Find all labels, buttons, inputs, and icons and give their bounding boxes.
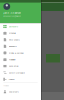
button[interactable]: Time Sheets bbox=[0, 36, 41, 43]
staticText: Availability bbox=[9, 58, 16, 61]
button[interactable]: Availability bbox=[0, 56, 41, 63]
staticText: Toolbox bbox=[3, 85, 9, 87]
button[interactable]: Logout bbox=[0, 76, 41, 83]
button[interactable]: Schedule bbox=[0, 30, 41, 36]
staticText: Dashboard bbox=[9, 25, 18, 28]
button[interactable]: Coworkers bbox=[0, 88, 41, 95]
staticText: Requests bbox=[9, 45, 17, 48]
staticText: Send Email bbox=[9, 65, 18, 67]
staticText: Schedule bbox=[9, 32, 16, 34]
staticText: Switch Workplace bbox=[9, 71, 25, 74]
button[interactable]: Send Email bbox=[0, 63, 41, 69]
staticText: Logout bbox=[9, 78, 15, 81]
staticText: Profile & Settings bbox=[9, 52, 24, 54]
button[interactable]: Requests bbox=[0, 43, 41, 50]
staticText: Time Sheets bbox=[9, 38, 20, 41]
button[interactable]: Dashboard bbox=[0, 23, 41, 30]
staticText: John Andersen bbox=[3, 11, 21, 14]
staticText: Coworkers bbox=[9, 90, 19, 93]
button[interactable]: Profile & Settings bbox=[0, 50, 41, 56]
button[interactable]: Switch Workplace bbox=[0, 69, 41, 76]
staticText: john.andersen@mail.com bbox=[3, 15, 20, 17]
